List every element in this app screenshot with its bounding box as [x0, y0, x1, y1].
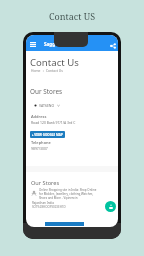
- staticText: SOT%28HOOPS023EH1D: [32, 205, 66, 209]
- staticText: Our Stores: [30, 87, 63, 96]
- staticText: Rajasthan India: [32, 201, 54, 205]
- staticText: Contact US: [49, 10, 96, 22]
- staticText: Our Stores: [31, 179, 60, 187]
- button[interactable]: Home: [31, 68, 63, 72]
- button[interactable]: ▸ VIEW GOOGLE MAP: [30, 131, 65, 138]
- button[interactable]: Menu: [27, 39, 39, 50]
- staticText: Road 120 Bank 97/1/A 3rd C: [31, 120, 76, 125]
- staticText: ▸ VIEW GOOGLE MAP: [32, 133, 63, 137]
- button[interactable]: VAT6ENO: [34, 103, 80, 108]
- staticText: Online Shopping site in India: Shop Onli…: [39, 188, 97, 192]
- staticText: Telephone: [31, 140, 51, 145]
- staticText: Sagg: [44, 41, 56, 47]
- staticText: Contact Us: [46, 68, 63, 72]
- staticText: VAT6ENO: [39, 103, 55, 108]
- staticText: 9897/3007: [31, 146, 48, 151]
- staticText: ›: [41, 68, 46, 72]
- staticText: Shoes and More - Vipinencin: [39, 196, 78, 200]
- staticText: for Mobiles, Jewellery, clothing,Watches…: [39, 192, 94, 196]
- staticText: Contact Us: [30, 56, 79, 69]
- staticText: Home: [31, 68, 41, 72]
- button[interactable]: Chat: [105, 201, 116, 212]
- staticText: Address: [31, 114, 47, 119]
- button[interactable]: Share: [107, 40, 118, 51]
